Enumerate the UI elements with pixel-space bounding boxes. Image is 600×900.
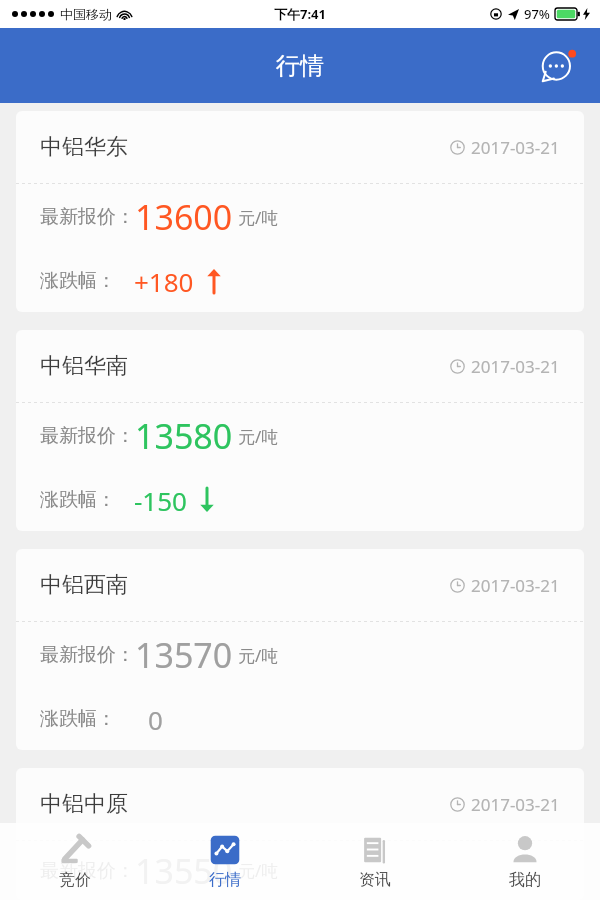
staticText: 元/吨 [238,859,279,882]
staticText: 元/吨 [238,425,279,448]
button[interactable]: 中铝华南 [16,330,584,531]
staticText: 13550 [135,848,233,894]
staticText: -150 [134,483,187,518]
button[interactable]: 资讯 [300,823,450,900]
staticText: 行情 [276,51,324,81]
staticText: 我的 [509,870,541,890]
staticText: 中铝西南 [40,571,128,599]
button[interactable]: Messages [536,43,582,89]
staticText: 资讯 [359,870,391,890]
staticText: 涨跌幅： [40,269,116,293]
staticText: 13580 [135,413,233,459]
staticText: 涨跌幅： [40,707,116,731]
staticText: 涨跌幅： [40,488,116,512]
staticText: 2017-03-21 [471,355,560,378]
staticText: 下午7:41 [274,5,326,23]
staticText: 元/吨 [238,644,279,667]
staticText: 2017-03-21 [471,793,560,816]
staticText: 中铝华南 [40,352,128,380]
button[interactable]: 竞价 [0,823,150,900]
staticText: 最新报价： [40,205,135,229]
button[interactable]: 行情 [150,823,300,900]
staticText: 中铝华东 [40,133,128,161]
button[interactable]: 中铝中原 [16,768,584,900]
staticText: 中国移动 [60,6,112,22]
staticText: 最新报价： [40,859,135,883]
staticText: +180 [134,264,194,299]
staticText: 元/吨 [238,206,279,229]
staticText: 0 [148,702,163,737]
staticText: 行情 [209,870,241,890]
staticText: 最新报价： [40,424,135,448]
staticText: 竞价 [59,870,91,890]
staticText: 2017-03-21 [471,574,560,597]
staticText: 97% [524,5,550,23]
button[interactable]: 中铝华东 [16,111,584,312]
staticText: 13570 [135,632,233,678]
staticText: 最新报价： [40,643,135,667]
staticText: 2017-03-21 [471,136,560,159]
staticText: 中铝中原 [40,790,128,818]
button[interactable]: 我的 [450,823,600,900]
button[interactable]: 中铝西南 [16,549,584,750]
staticText: 13600 [135,194,233,240]
